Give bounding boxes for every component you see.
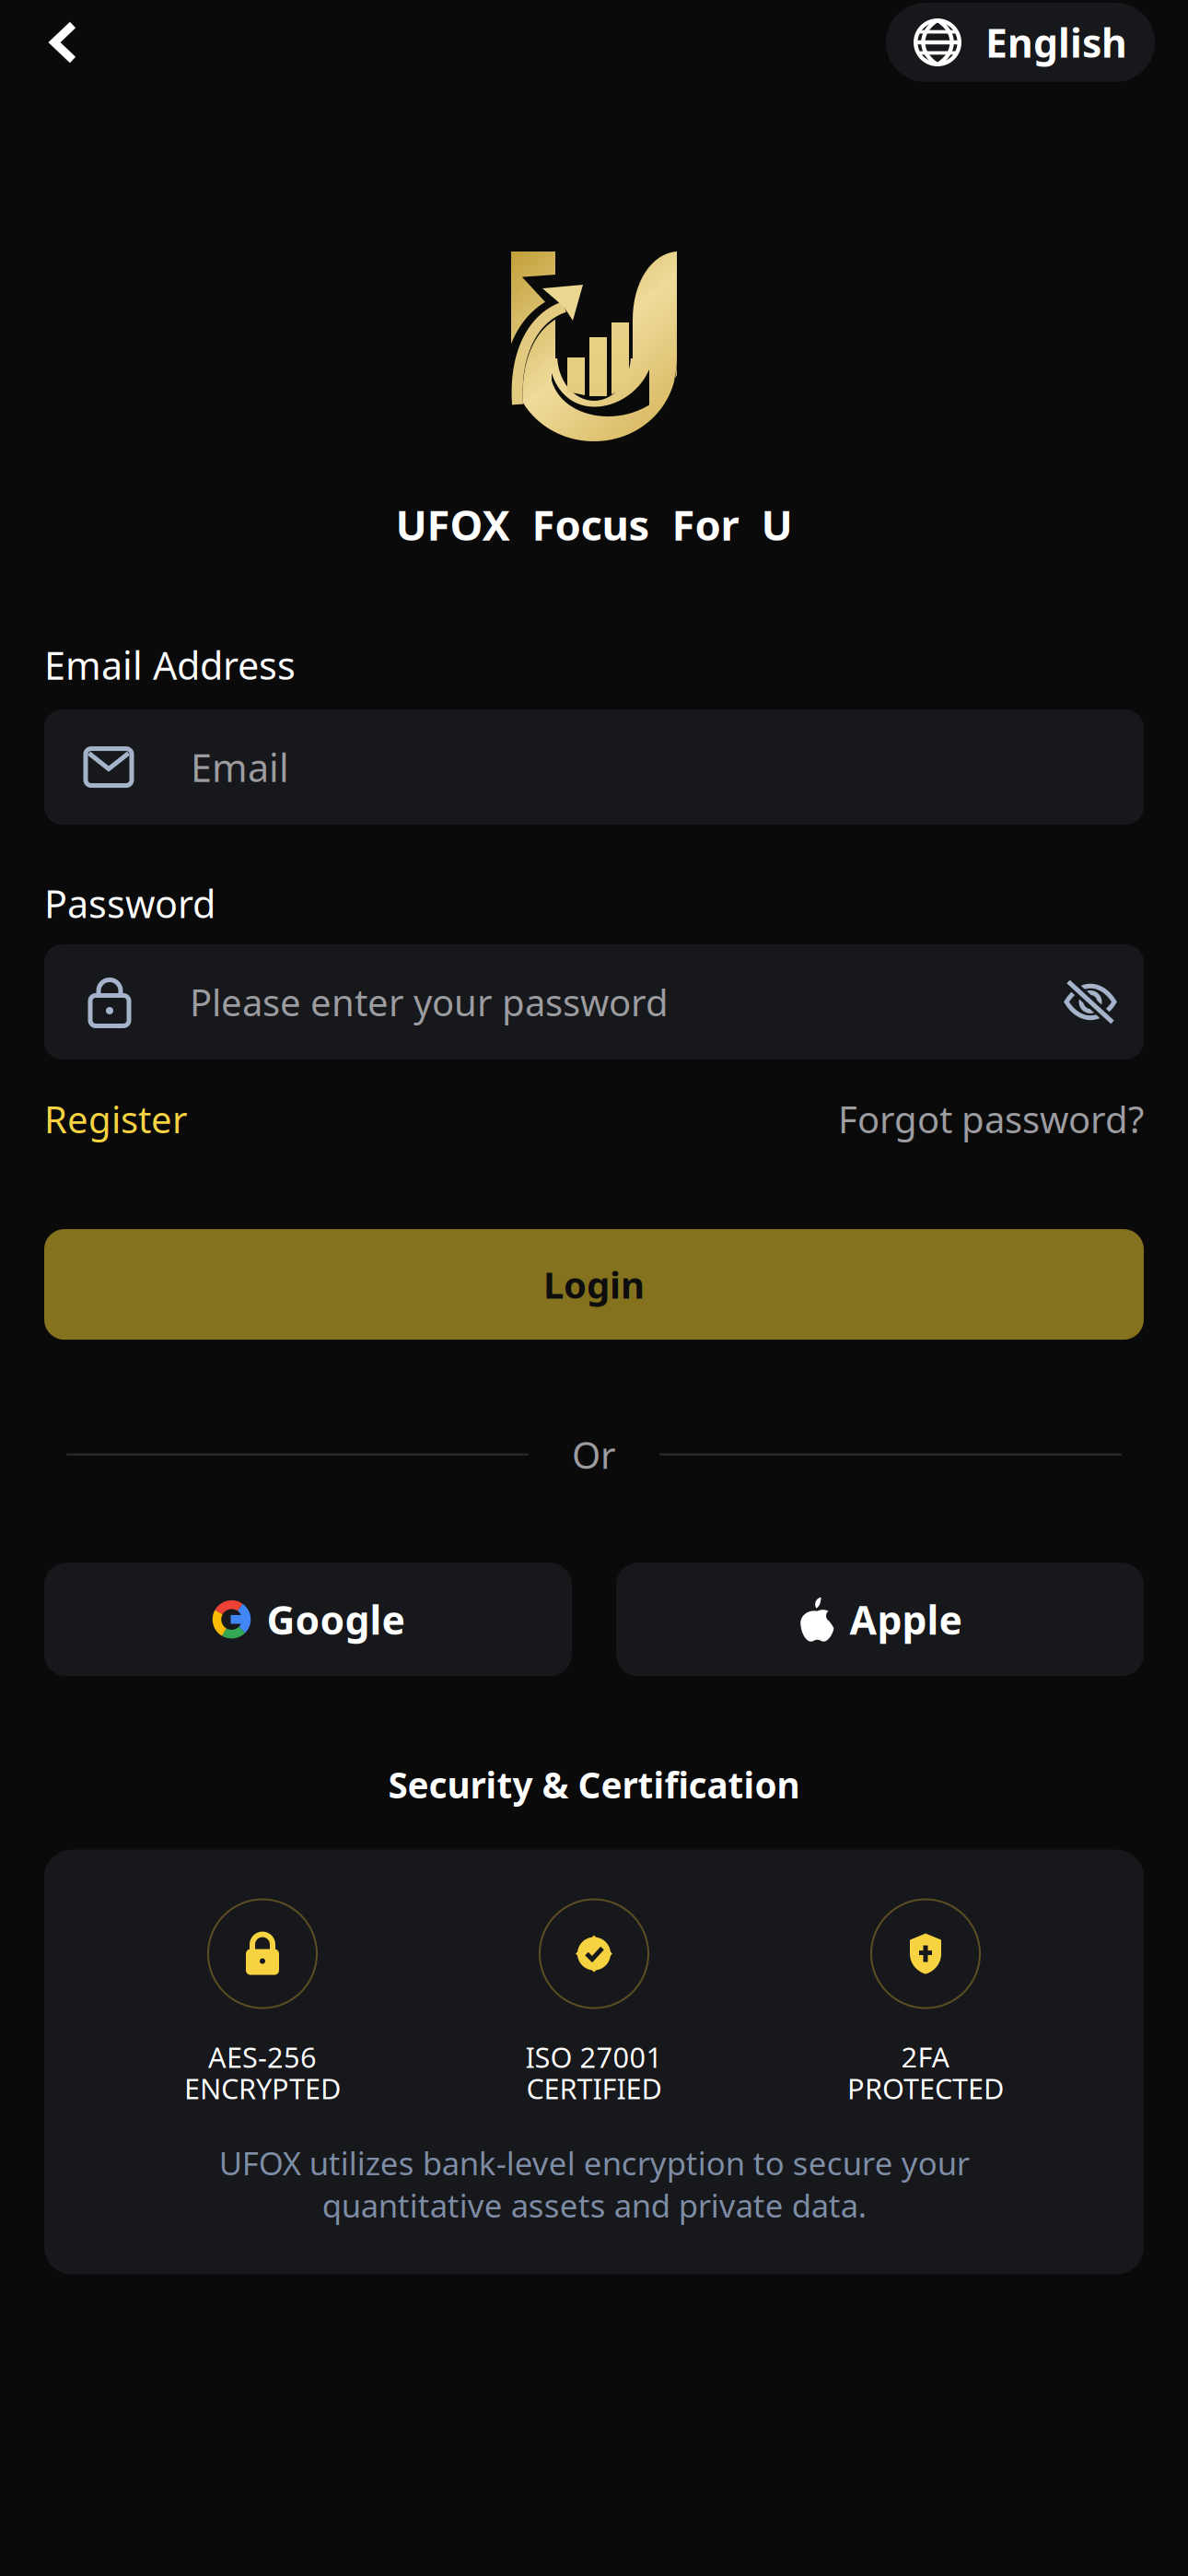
button[interactable]: Register xyxy=(44,1085,188,1153)
staticText: UFOX Focus For U xyxy=(396,497,792,552)
button[interactable]: Forgot password? xyxy=(838,1085,1144,1153)
staticText: Or xyxy=(572,1430,616,1479)
staticText: Google xyxy=(267,1593,405,1646)
staticText: ISO 27001 xyxy=(525,2038,663,2076)
button[interactable]: Back xyxy=(0,5,105,80)
staticText: UFOX utilizes bank-level encryption to s… xyxy=(219,2142,969,2227)
staticText: CERTIFIED xyxy=(526,2069,662,2107)
button[interactable]: Google xyxy=(44,1563,572,1676)
staticText: Apple xyxy=(850,1593,962,1646)
staticText: ENCRYPTED xyxy=(184,2069,341,2107)
staticText: PROTECTED xyxy=(847,2069,1004,2107)
staticText: Password xyxy=(44,878,215,929)
staticText: 2FA xyxy=(901,2038,950,2076)
button[interactable]: English xyxy=(886,3,1155,82)
staticText: Security & Certification xyxy=(388,1761,800,1808)
staticText: Login xyxy=(543,1260,645,1309)
staticText: AES-256 xyxy=(208,2038,317,2076)
staticText: Email Address xyxy=(44,640,296,690)
staticText: Please enter your password xyxy=(190,977,669,1026)
button[interactable]: Show password xyxy=(1065,980,1144,1024)
button[interactable]: Login xyxy=(44,1229,1144,1340)
staticText: Forgot password? xyxy=(838,1095,1144,1143)
staticText: Email xyxy=(191,742,289,792)
button[interactable]: Apple xyxy=(616,1563,1144,1676)
staticText: Register xyxy=(44,1095,188,1143)
staticText: English xyxy=(985,16,1127,69)
